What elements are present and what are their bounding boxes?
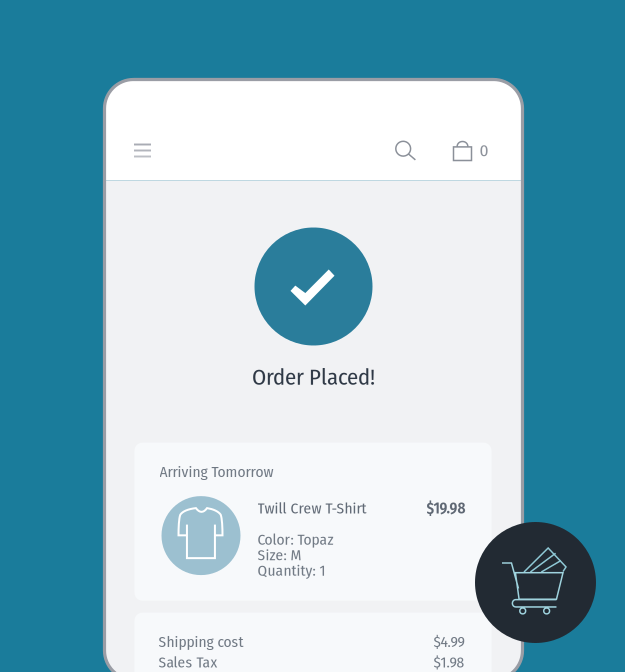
button[interactable]: Menu [127,135,157,165]
staticText: Shipping cost [158,633,243,651]
staticText: Order Placed! [252,363,375,391]
button[interactable]: Search [390,135,420,165]
staticText: Quantity: 1 [257,561,325,580]
staticText: Arriving Tomorrow [159,463,273,481]
staticText: 0 [479,140,488,161]
staticText: $19.98 [426,499,465,517]
staticText: $1.98 [433,653,464,671]
staticText: $4.99 [433,633,464,651]
staticText: Twill Crew T-Shirt [257,499,366,517]
button[interactable]: Cart, 0 items [453,135,488,165]
staticText: Sales Tax [158,653,217,671]
staticText: Color: Topaz [257,530,333,549]
staticText: Size: M [257,546,301,564]
